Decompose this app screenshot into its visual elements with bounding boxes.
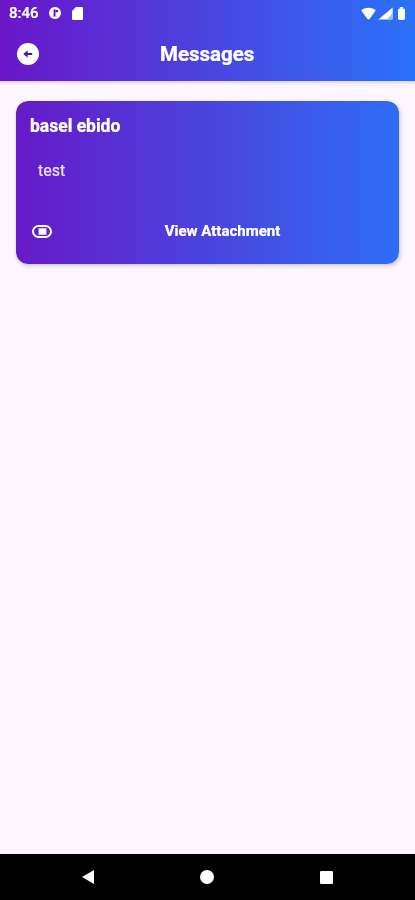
staticText: Messages bbox=[160, 42, 255, 66]
staticText: View Attachment bbox=[52, 222, 393, 240]
button[interactable]: basel ebido bbox=[16, 101, 399, 264]
button[interactable]: Recents bbox=[302, 854, 350, 900]
button[interactable]: View Attachment bbox=[16, 216, 399, 246]
staticText: 8:46 bbox=[9, 4, 39, 22]
staticText: test bbox=[38, 161, 66, 180]
button[interactable]: Home bbox=[183, 854, 231, 900]
staticText: basel ebido bbox=[30, 116, 121, 137]
button[interactable]: Back bbox=[64, 854, 112, 900]
button[interactable]: Back bbox=[17, 43, 39, 65]
